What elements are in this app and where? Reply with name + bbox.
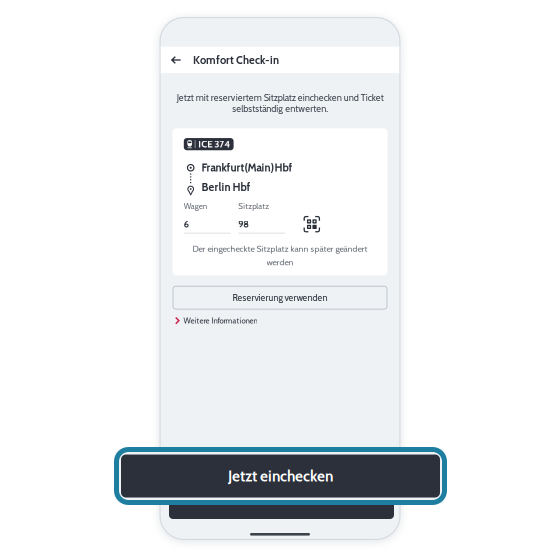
button[interactable]: Komfort Check-in bbox=[159, 46, 400, 73]
staticText: 6 bbox=[184, 219, 189, 230]
staticText: Reservierung verwenden bbox=[232, 292, 327, 303]
staticText: Weitere Informationen bbox=[183, 316, 257, 325]
staticText: Frankfurt(Main)Hbf bbox=[201, 161, 292, 174]
staticText: Jetzt einchecken bbox=[228, 467, 333, 485]
staticText: Berlin Hbf bbox=[201, 180, 250, 194]
button[interactable]: Reservierung verwenden bbox=[172, 286, 387, 310]
button[interactable]: Sitzplatz per QR-Code scannen bbox=[303, 216, 320, 234]
staticText: Jetzt mit reserviertem Sitzplatz einchec… bbox=[176, 92, 383, 114]
staticText: Wagen bbox=[184, 201, 207, 211]
staticText: ICE 374 bbox=[198, 138, 230, 150]
staticText: Komfort Check-in bbox=[193, 53, 279, 67]
button[interactable]: Weitere Informationen bbox=[170, 315, 390, 327]
staticText: Der eingecheckte Sitzplatz kann später g… bbox=[192, 243, 367, 254]
button[interactable]: Jetzt einchecken bbox=[121, 454, 440, 497]
staticText: werden bbox=[266, 257, 293, 267]
staticText: 98 bbox=[238, 219, 249, 230]
staticText: Sitzplatz bbox=[238, 201, 269, 211]
